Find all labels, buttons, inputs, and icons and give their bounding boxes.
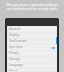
staticText: Storage <box>9 57 20 61</box>
staticText: Theme <box>9 37 18 39</box>
staticText: Manage all your application settings and… <box>5 3 59 11</box>
staticText: Privacy <box>9 51 20 55</box>
button[interactable]: Privacy <box>7 51 57 57</box>
staticText: English <box>9 67 18 69</box>
button[interactable]: Storage <box>7 57 57 63</box>
staticText: Profile <box>9 31 17 33</box>
staticText: Account <box>9 27 21 31</box>
button[interactable]: Notifications <box>7 39 57 45</box>
staticText: About <box>9 69 18 72</box>
button[interactable]: About <box>7 69 57 72</box>
button[interactable]: Language <box>7 63 57 69</box>
staticText: Display <box>9 33 20 37</box>
staticText: Secure <box>9 55 17 57</box>
button[interactable]: Account <box>7 27 57 33</box>
staticText: Notifications <box>9 39 27 43</box>
staticText: Wi-Fi <box>9 49 15 51</box>
staticText: Cache <box>9 61 17 63</box>
button[interactable]: Display <box>7 33 57 39</box>
staticText: Sync data <box>9 45 23 49</box>
staticText: Sound <box>9 43 17 45</box>
staticText: Language <box>9 63 24 67</box>
button[interactable]: Sync data <box>7 45 57 51</box>
